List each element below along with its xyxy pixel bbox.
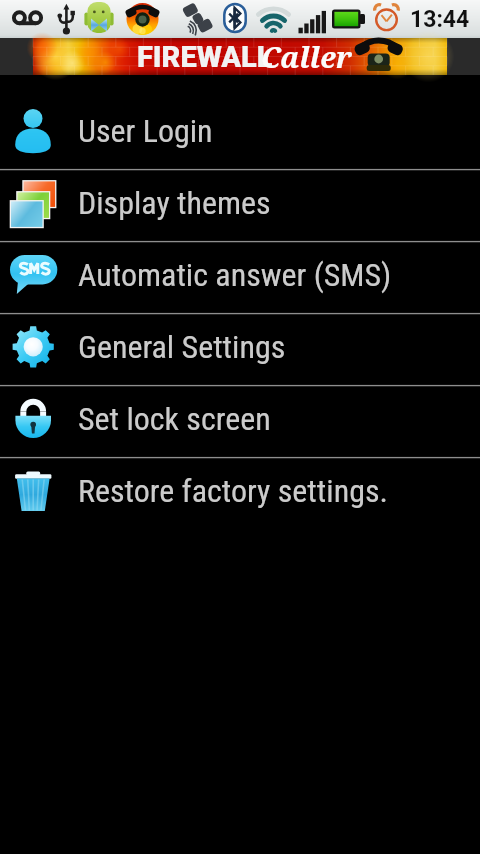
button[interactable]: Restore factory settings. (0, 459, 480, 528)
staticText: 13:44 (410, 6, 470, 33)
staticText: General Settings (78, 328, 286, 366)
staticText: FIREWALL (137, 40, 273, 74)
staticText: Set lock screen (78, 400, 271, 438)
staticText: Restore factory settings. (78, 472, 388, 510)
staticText: Caller (261, 37, 352, 74)
button[interactable]: General Settings (0, 315, 480, 384)
staticText: Display themes (78, 184, 271, 222)
button[interactable]: Advertisement: Firewall Caller (0, 38, 480, 75)
button[interactable]: Automatic answer (SMS) (0, 243, 480, 312)
button[interactable]: Set lock screen (0, 387, 480, 456)
button[interactable]: Display themes (0, 171, 480, 240)
button[interactable]: User Login (0, 99, 480, 168)
staticText: Automatic answer (SMS) (78, 256, 392, 294)
staticText: User Login (78, 112, 213, 150)
